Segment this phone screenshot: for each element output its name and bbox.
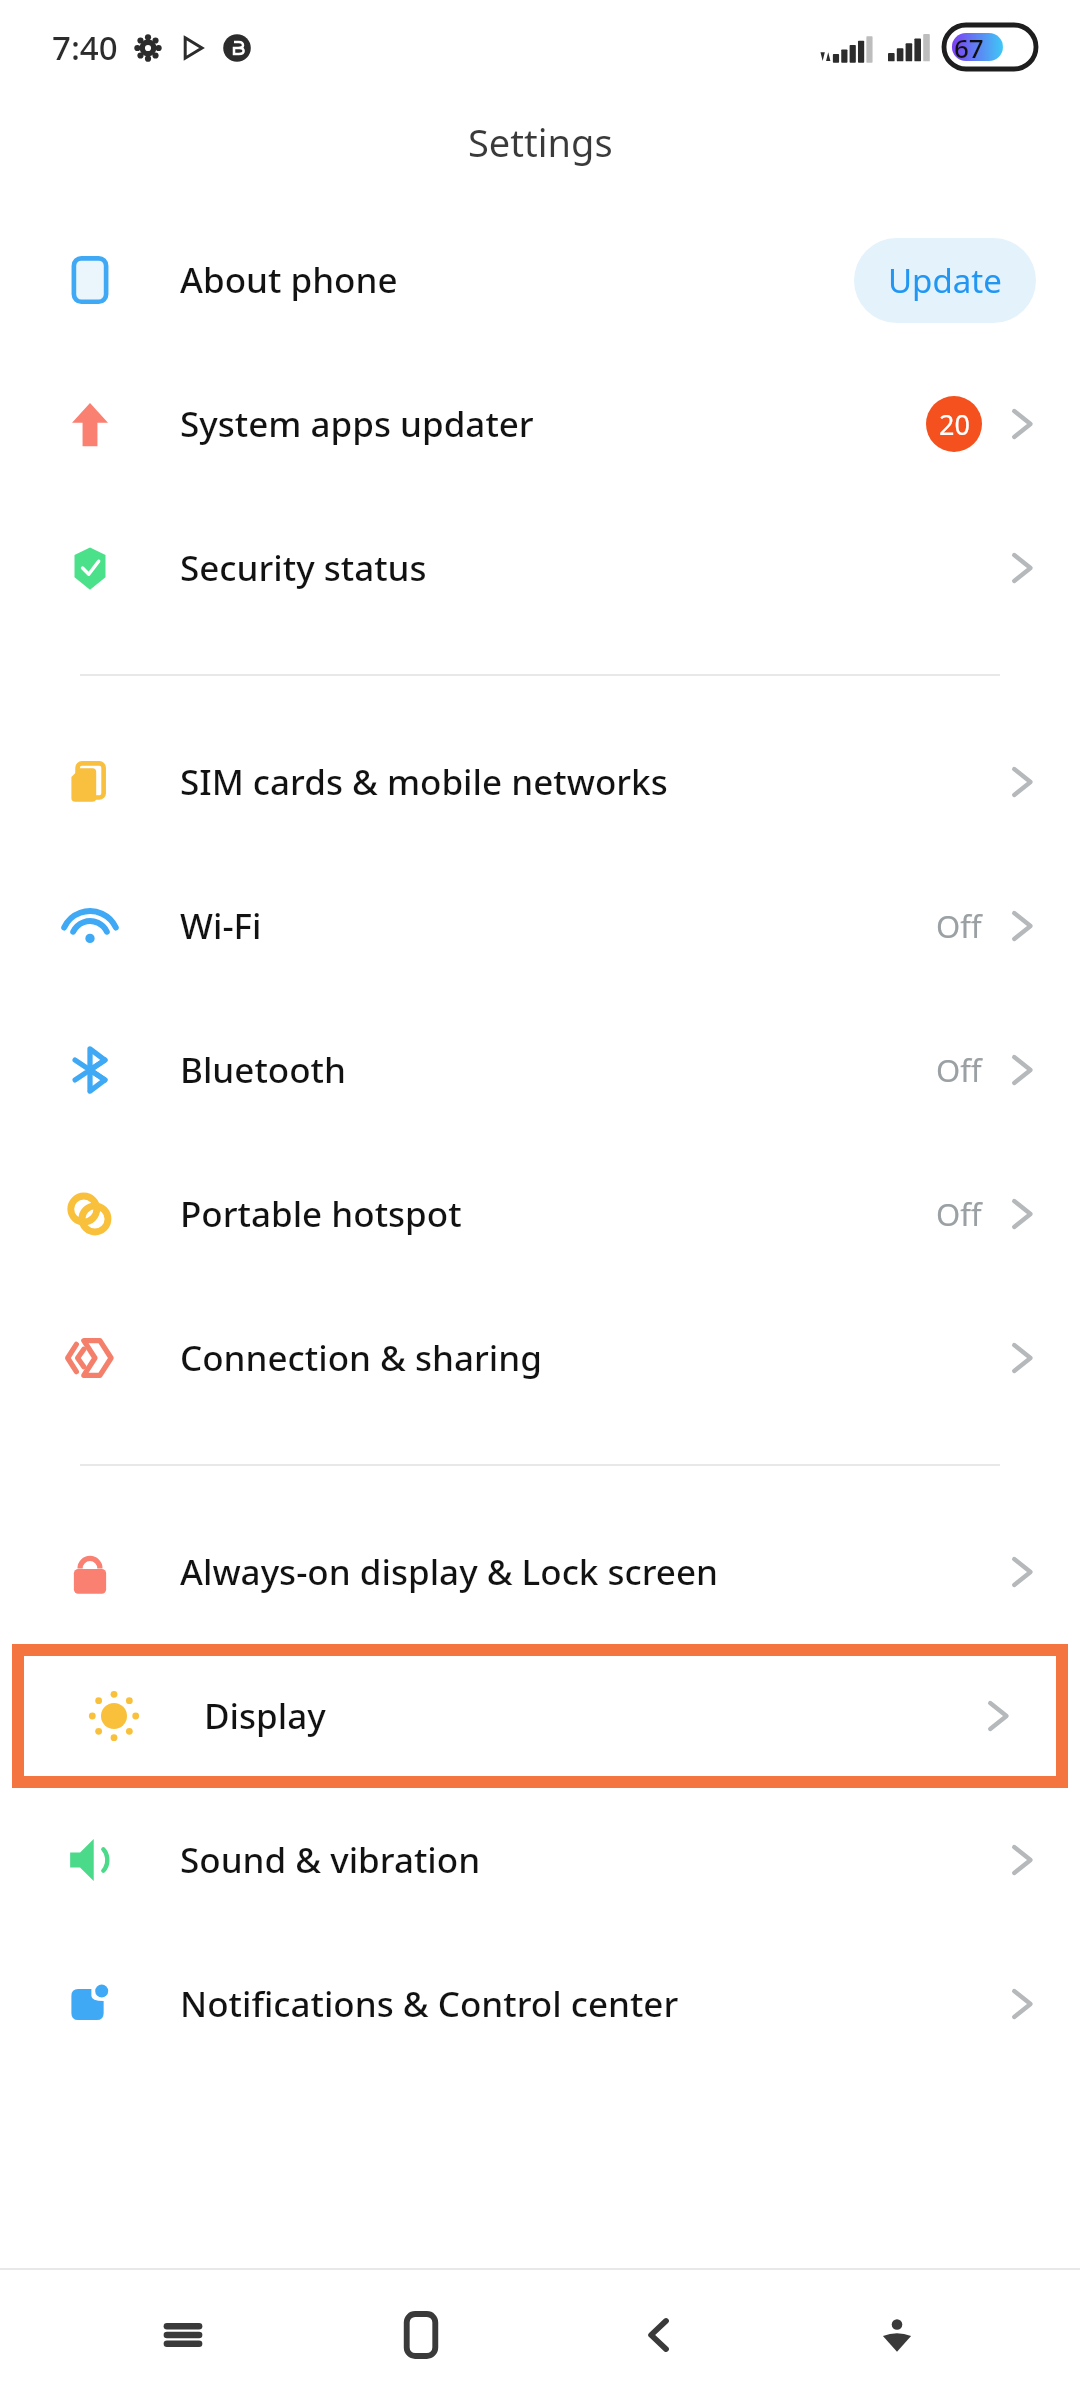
staticText: Off	[936, 1049, 982, 1091]
staticText: 7:40	[52, 25, 118, 70]
button[interactable]: System apps updater	[0, 352, 1080, 496]
staticText: Sound & vibration	[180, 1836, 1004, 1884]
button[interactable]: About phone	[0, 208, 1080, 352]
staticText: Settings	[468, 116, 613, 168]
staticText: Bluetooth	[180, 1046, 936, 1094]
button[interactable]: Hide keyboard	[842, 2280, 952, 2390]
staticText: Off	[936, 1193, 982, 1235]
button[interactable]: SIM cards & mobile networks	[0, 710, 1080, 854]
staticText: SIM cards & mobile networks	[180, 758, 1004, 806]
staticText: Portable hotspot	[180, 1190, 936, 1238]
staticText: Always-on display & Lock screen	[180, 1548, 1004, 1596]
staticText: 20	[939, 406, 970, 443]
button[interactable]: Sound & vibration	[0, 1788, 1080, 1932]
button[interactable]: Recent apps	[128, 2280, 238, 2390]
button[interactable]: Back	[604, 2280, 714, 2390]
staticText: Off	[936, 905, 982, 947]
button[interactable]: Bluetooth	[0, 998, 1080, 1142]
button[interactable]: Connection & sharing	[0, 1286, 1080, 1430]
staticText: Connection & sharing	[180, 1334, 1004, 1382]
button[interactable]: Home	[366, 2280, 476, 2390]
staticText: About phone	[180, 256, 854, 304]
button[interactable]: Notifications & Control center	[0, 1932, 1080, 2076]
staticText: System apps updater	[180, 400, 926, 448]
button[interactable]: Always-on display & Lock screen	[0, 1500, 1080, 1644]
staticText: Update	[888, 258, 1002, 303]
button[interactable]: Update	[854, 238, 1036, 323]
staticText: Wi-Fi	[180, 902, 936, 950]
button[interactable]: Display	[24, 1656, 1056, 1776]
button[interactable]: Wi-Fi	[0, 854, 1080, 998]
button[interactable]: Security status	[0, 496, 1080, 640]
staticText: Security status	[180, 544, 1004, 592]
staticText: Display	[204, 1692, 980, 1740]
staticText: 67	[954, 30, 984, 65]
button[interactable]: Portable hotspot	[0, 1142, 1080, 1286]
staticText: Notifications & Control center	[180, 1980, 1004, 2028]
